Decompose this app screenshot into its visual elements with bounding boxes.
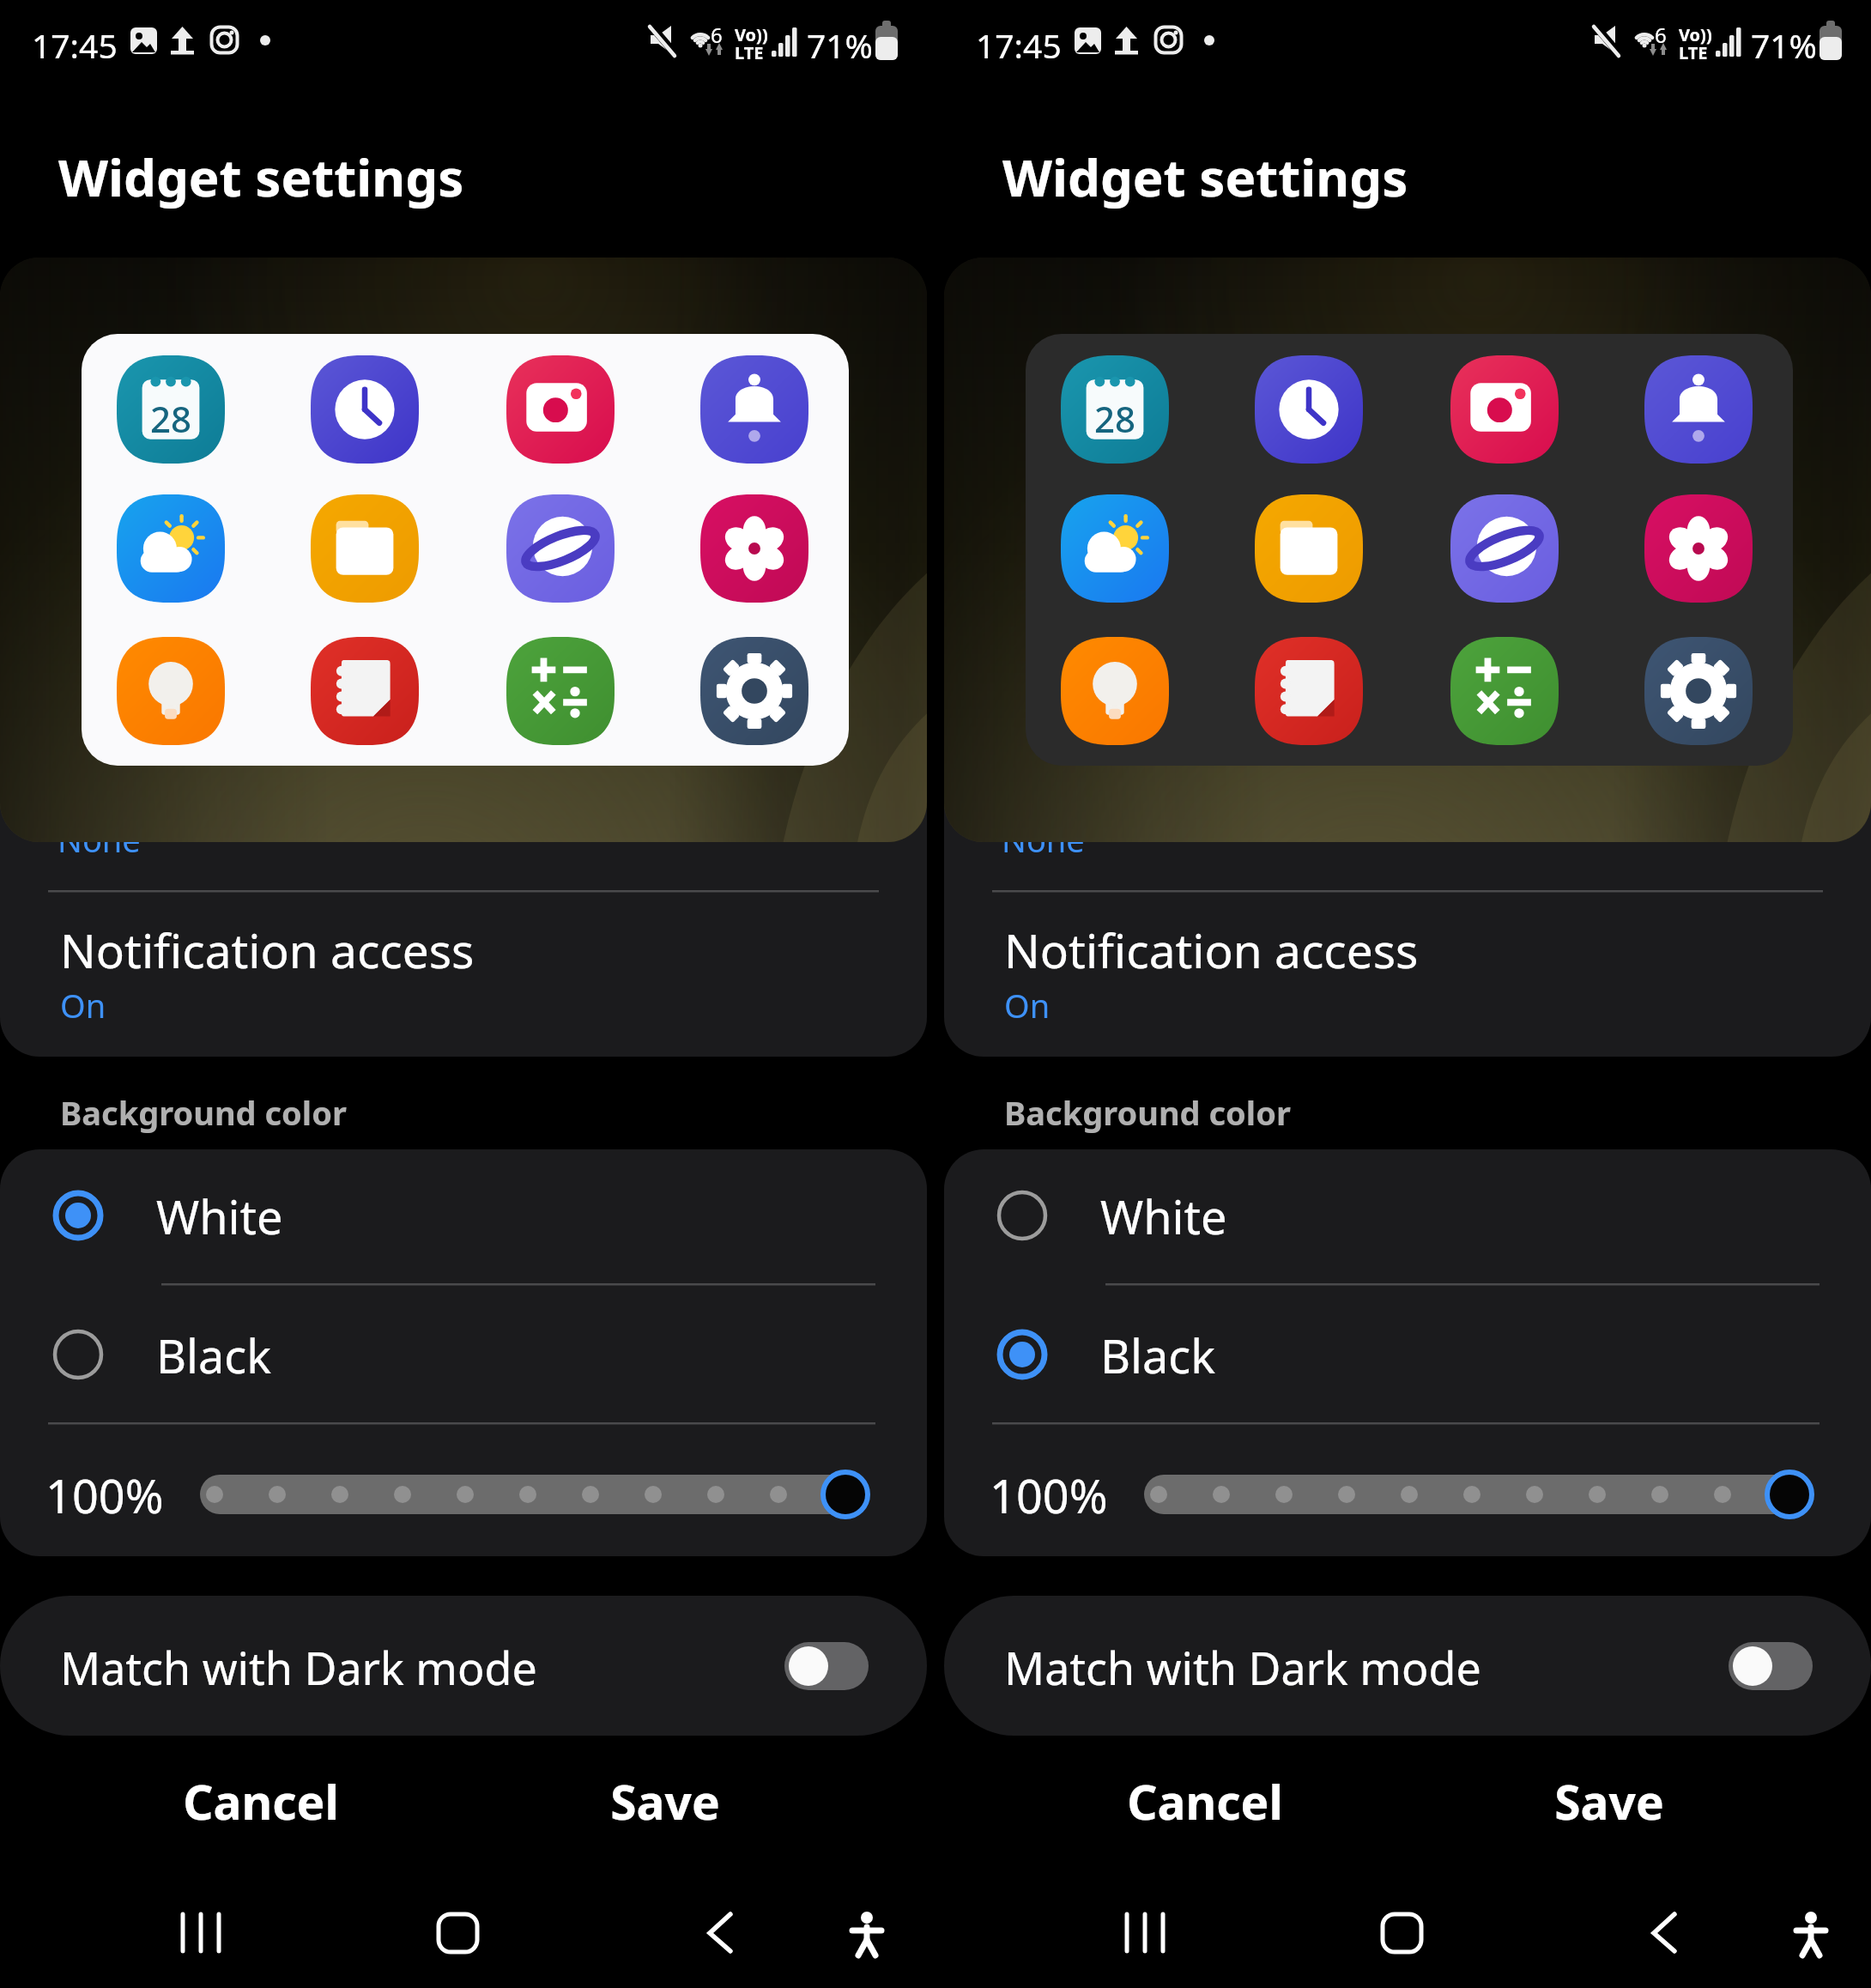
button[interactable]	[200, 1458, 887, 1531]
button[interactable]: Black	[944, 1288, 1871, 1422]
button[interactable]: Cancel	[124, 1754, 398, 1844]
staticText: 17:45	[32, 22, 118, 68]
staticText: LTE	[1679, 41, 1708, 64]
staticText: 71%	[807, 22, 874, 68]
button[interactable]: Match with Dark mode	[0, 1596, 927, 1736]
button[interactable]: 28	[1026, 334, 1793, 766]
staticText: Save	[1472, 1769, 1747, 1833]
staticText: None	[1002, 817, 1085, 862]
staticText: 28	[1094, 394, 1136, 443]
staticText: Background color	[1004, 1090, 1291, 1135]
button[interactable]: Notification access	[0, 892, 927, 1057]
button[interactable]: Home	[406, 1888, 509, 1978]
staticText: Black	[1100, 1324, 1216, 1387]
button[interactable]: Recent apps	[1093, 1888, 1196, 1978]
button[interactable]: Black	[0, 1288, 927, 1422]
staticText: 28	[150, 394, 192, 443]
button[interactable]: White	[944, 1149, 1871, 1283]
staticText: 6	[1655, 21, 1667, 49]
staticText: Black	[156, 1324, 272, 1387]
button[interactable]: 28	[82, 334, 849, 766]
staticText: White	[156, 1185, 283, 1248]
button[interactable]: Cancel	[1068, 1754, 1342, 1844]
button[interactable]: Recent apps	[149, 1888, 252, 1978]
button[interactable]	[1144, 1458, 1831, 1531]
button[interactable]: Accessibility	[1764, 1888, 1858, 1978]
staticText: LTE	[735, 41, 764, 64]
button[interactable]: Save	[1472, 1754, 1747, 1844]
staticText: Match with Dark mode	[60, 1637, 537, 1698]
button[interactable]: Home	[1350, 1888, 1453, 1978]
staticText: 100%	[990, 1464, 1108, 1527]
staticText: On	[1004, 983, 1051, 1027]
button[interactable]: Notification access	[944, 892, 1871, 1057]
button[interactable]: Accessibility	[820, 1888, 914, 1978]
staticText: Save	[528, 1769, 802, 1833]
staticText: Widget settings	[58, 142, 464, 212]
staticText: Cancel	[124, 1769, 398, 1833]
staticText: 6	[711, 21, 723, 49]
staticText: Match with Dark mode	[1004, 1637, 1481, 1698]
staticText: None	[58, 817, 141, 862]
button[interactable]: Back	[1607, 1888, 1710, 1978]
staticText: Vo))	[1679, 23, 1712, 46]
staticText: 71%	[1751, 22, 1818, 68]
button[interactable]: White	[0, 1149, 927, 1283]
staticText: Widget settings	[1002, 142, 1408, 212]
staticText: Notification access	[1004, 918, 1419, 982]
staticText: Cancel	[1068, 1769, 1342, 1833]
staticText: Background color	[60, 1090, 347, 1135]
button[interactable]: Back	[663, 1888, 766, 1978]
button[interactable]: Save	[528, 1754, 802, 1844]
staticText: White	[1100, 1185, 1227, 1248]
staticText: 100%	[45, 1464, 164, 1527]
staticText: Notification access	[60, 918, 475, 982]
staticText: On	[60, 983, 106, 1027]
staticText: 17:45	[976, 22, 1062, 68]
staticText: Vo))	[735, 23, 768, 46]
button[interactable]: Match with Dark mode	[944, 1596, 1871, 1736]
